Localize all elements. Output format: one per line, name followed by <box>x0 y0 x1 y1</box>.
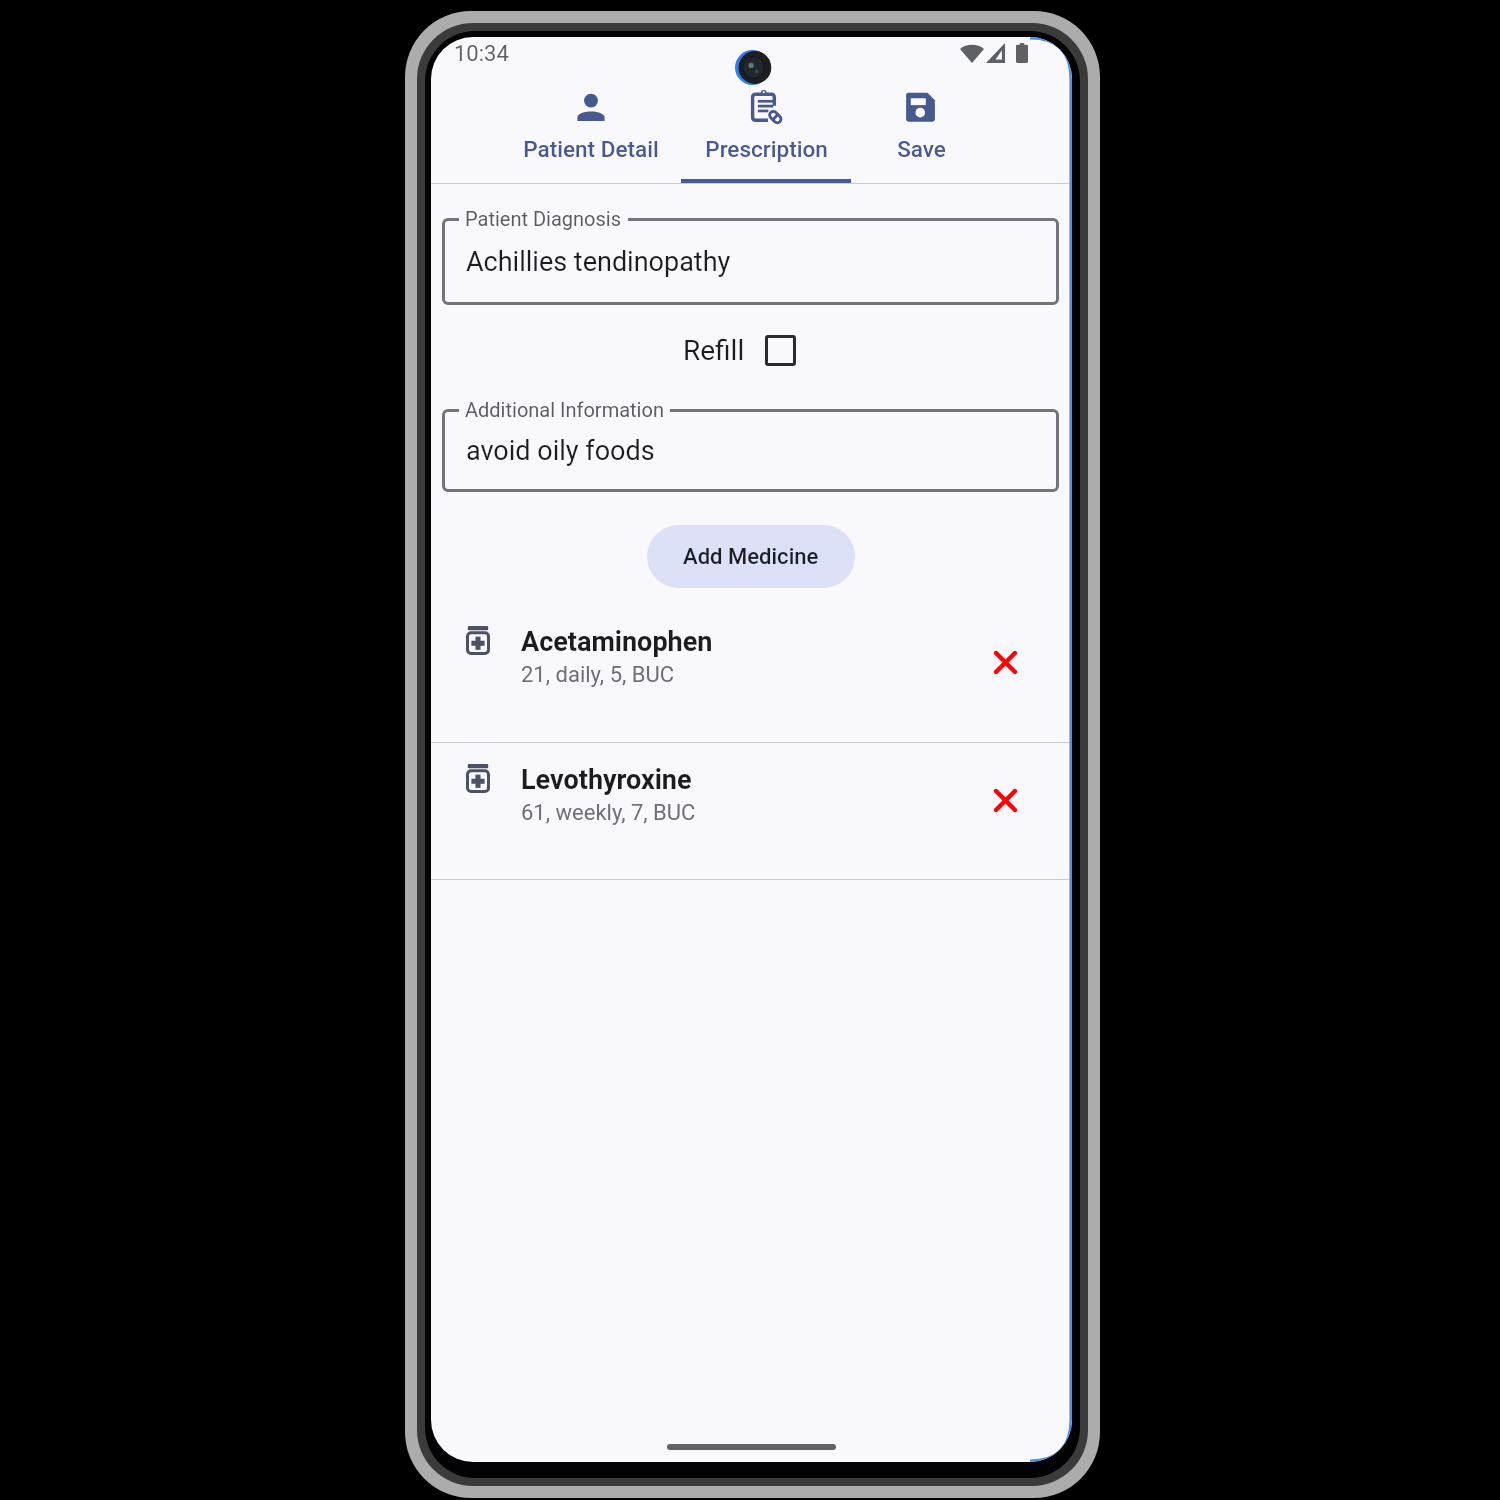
button[interactable]: Levothyroxine <box>431 742 1072 879</box>
staticText: Add Medicine <box>683 544 819 570</box>
staticText: Prescription <box>705 136 828 162</box>
button[interactable]: Remove Levothyroxine <box>983 778 1027 822</box>
staticText: Acetaminophen <box>521 626 713 658</box>
staticText: Achillies tendinopathy <box>466 246 731 278</box>
button[interactable]: Patient Detail <box>500 74 681 184</box>
button[interactable]: Achillies tendinopathy <box>442 218 1059 305</box>
button[interactable]: avoid oily foods <box>442 409 1059 492</box>
staticText: Patient Detail <box>523 136 659 162</box>
button[interactable]: Acetaminophen <box>431 604 1072 741</box>
staticText: Refill <box>683 334 745 367</box>
staticText: Patient Diagnosis <box>465 207 622 230</box>
button[interactable]: Prescription <box>681 74 851 184</box>
button[interactable]: Refill <box>683 332 796 369</box>
staticText: Save <box>897 136 946 162</box>
button[interactable]: Remove Acetaminophen <box>983 640 1027 684</box>
staticText: Levothyroxine <box>521 764 692 796</box>
staticText: 21, daily, 5, BUC <box>521 662 675 688</box>
button[interactable]: Add Medicine <box>647 525 855 588</box>
staticText: 61, weekly, 7, BUC <box>521 800 696 826</box>
staticText: Additional Information <box>465 398 664 421</box>
staticText: avoid oily foods <box>466 435 655 467</box>
staticText: 10:34 <box>454 41 509 67</box>
button[interactable]: Save <box>851 74 991 184</box>
